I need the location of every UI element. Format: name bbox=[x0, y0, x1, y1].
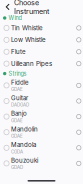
staticText: CGDA bbox=[11, 149, 23, 154]
button[interactable]: Banjo bbox=[0, 109, 83, 124]
button[interactable]: Fiddle bbox=[0, 78, 83, 93]
button[interactable]: Guitar bbox=[0, 93, 83, 109]
button[interactable]: Tin Whistle bbox=[0, 22, 83, 34]
button[interactable]: Mandolin bbox=[0, 124, 83, 140]
staticText: GDAE bbox=[11, 133, 23, 139]
staticText: Strings bbox=[8, 70, 26, 77]
button[interactable]: Mandola bbox=[0, 140, 83, 156]
button[interactable]: Flute bbox=[0, 46, 83, 58]
button[interactable]: Back bbox=[2, 1, 14, 13]
staticText: GDAD bbox=[11, 165, 23, 170]
staticText: Mandolin bbox=[11, 125, 38, 133]
button[interactable]: Bouzouki bbox=[0, 156, 83, 171]
button[interactable]: Low Whistle bbox=[0, 34, 83, 46]
staticText: Choose Instrument bbox=[14, 0, 49, 16]
staticText: Flute bbox=[11, 48, 26, 55]
staticText: Uilleann Pipes bbox=[11, 60, 52, 67]
staticText: Banjo bbox=[11, 110, 27, 117]
staticText: GDAE bbox=[11, 87, 23, 92]
staticText: Mandola bbox=[11, 141, 36, 148]
staticText: Guitar bbox=[11, 94, 28, 102]
staticText: Fiddle bbox=[11, 79, 29, 86]
button[interactable]: Uilleann Pipes bbox=[0, 58, 83, 70]
staticText: Low Whistle bbox=[11, 36, 46, 43]
staticText: Bouzouki bbox=[11, 157, 38, 164]
staticText: GDAE bbox=[11, 118, 23, 123]
staticText: Wind bbox=[8, 15, 21, 21]
staticText: Tin Whistle bbox=[11, 24, 43, 32]
staticText: DADGAD bbox=[11, 102, 29, 108]
